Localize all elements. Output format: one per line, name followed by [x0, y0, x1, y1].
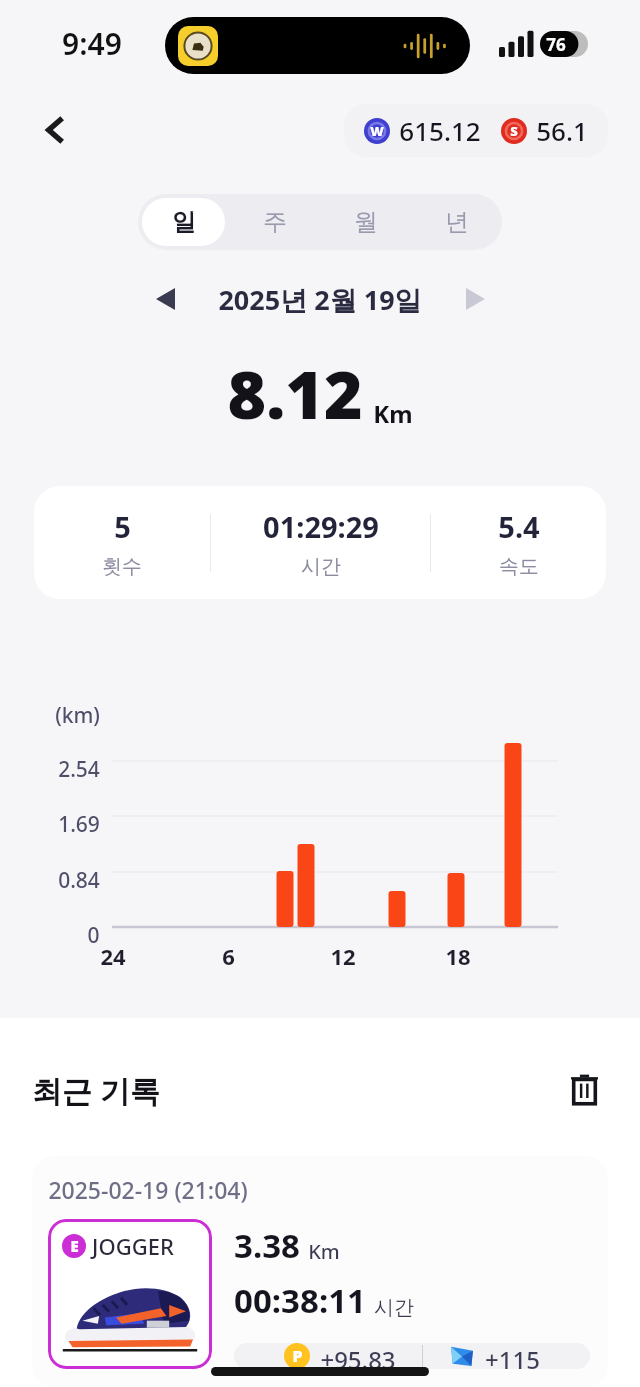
staticText: 8.12 [227, 348, 363, 438]
staticText: +95.83 [320, 1343, 396, 1369]
staticText: 속도 [499, 554, 539, 579]
staticText: E [70, 1236, 79, 1256]
staticText: 6 [222, 941, 235, 971]
staticText: 56.1 [536, 113, 588, 148]
staticText: 년 [445, 207, 469, 237]
staticText: 5.4 [498, 507, 540, 546]
button[interactable]: E [48, 1219, 212, 1369]
button[interactable]: 2025-02-19 (21:04) [32, 1156, 608, 1387]
button[interactable]: 년 [415, 198, 498, 246]
staticText: 9:49 [62, 23, 122, 64]
staticText: W [370, 122, 384, 140]
staticText: 18 [445, 941, 471, 971]
button[interactable]: Back [28, 102, 84, 158]
staticText: 월 [354, 207, 378, 237]
staticText: 일 [172, 207, 196, 237]
staticText: S [510, 122, 518, 140]
button[interactable]: 주 [233, 198, 316, 246]
staticText: P [292, 1345, 303, 1367]
staticText: +115 [485, 1343, 540, 1369]
staticText: 12 [330, 941, 356, 971]
button[interactable]: W [344, 104, 608, 157]
staticText: 주 [263, 207, 287, 237]
button[interactable]: Next day [452, 276, 498, 322]
button[interactable]: 월 [324, 198, 407, 246]
staticText: JOGGER [92, 1231, 174, 1261]
button[interactable]: Delete records [560, 1066, 608, 1114]
staticText: 24 [100, 941, 126, 971]
staticText: 최근 기록 [32, 1070, 160, 1111]
staticText: 시간 [301, 554, 341, 579]
staticText: 0.84 [58, 866, 100, 895]
button[interactable]: Previous day [142, 276, 188, 322]
staticText: 2025년 2월 19일 [218, 281, 422, 318]
staticText: 615.12 [399, 113, 481, 148]
staticText: Km [373, 397, 413, 430]
staticText: 2.54 [58, 755, 100, 784]
button[interactable]: 5 [34, 486, 606, 599]
staticText: 76 [546, 33, 566, 56]
staticText: 00:38:11 [234, 1278, 366, 1323]
staticText: 0 [87, 921, 100, 950]
staticText: 횟수 [102, 554, 142, 579]
button[interactable]: 일 [142, 198, 225, 246]
staticText: Km [308, 1238, 340, 1265]
staticText: 5 [114, 507, 131, 546]
staticText: 3.38 [234, 1223, 300, 1268]
staticText: 시간 [374, 1295, 414, 1320]
staticText: 01:29:29 [263, 507, 379, 546]
staticText: (km) [55, 701, 100, 730]
button[interactable]: P [234, 1343, 590, 1369]
staticText: 2025-02-19 (21:04) [48, 1174, 248, 1205]
staticText: 1.69 [58, 810, 100, 839]
